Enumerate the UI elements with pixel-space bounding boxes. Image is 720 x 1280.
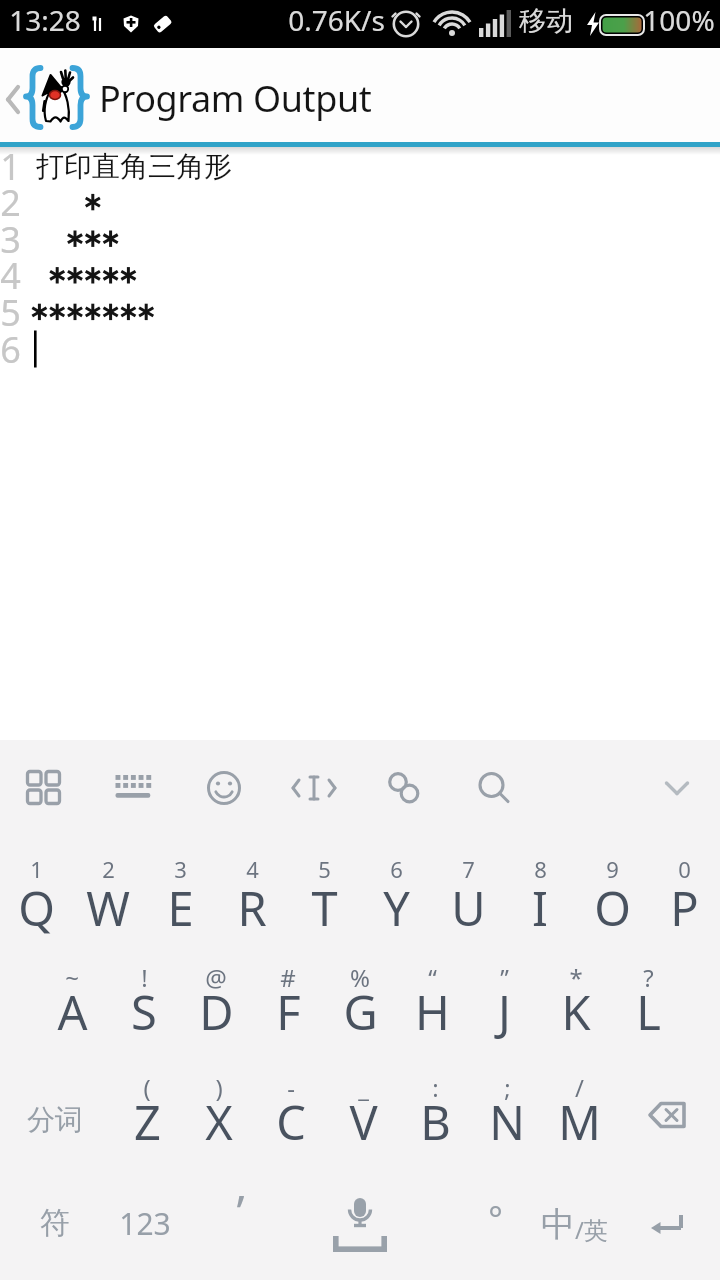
button[interactable] [576, 826, 648, 932]
staticText: D [199, 980, 234, 1044]
button[interactable] [635, 1087, 699, 1143]
staticText: /英 [575, 1213, 608, 1246]
button[interactable] [200, 764, 248, 812]
staticText: : [432, 1071, 439, 1104]
button[interactable] [540, 936, 612, 1042]
staticText: K [561, 980, 591, 1044]
button[interactable] [288, 826, 360, 932]
staticText: 8 [534, 854, 547, 884]
button[interactable] [111, 1048, 183, 1154]
staticText: 3 [174, 854, 187, 884]
staticText: Z [134, 1090, 161, 1154]
button[interactable] [399, 1048, 471, 1154]
staticText: E [167, 876, 194, 940]
staticText: ; [504, 1071, 511, 1104]
staticText: 2 [102, 854, 115, 884]
button[interactable]: 1 [0, 155, 720, 740]
button[interactable] [543, 1048, 615, 1154]
button[interactable] [252, 936, 324, 1042]
button[interactable] [653, 764, 701, 812]
staticText: V [349, 1090, 378, 1154]
staticText: 123 [119, 1203, 171, 1244]
button[interactable]: 分词 [10, 1091, 100, 1147]
staticText: % [350, 961, 370, 994]
staticText: 中 [541, 1203, 575, 1246]
staticText: - [287, 1071, 295, 1104]
staticText: ( [143, 1071, 151, 1104]
staticText: 4 [246, 854, 259, 884]
button[interactable] [109, 764, 157, 812]
staticText: P [670, 876, 699, 940]
staticText: 2 [0, 178, 21, 227]
button[interactable]: 符 [15, 1193, 95, 1253]
staticText: 分词 [27, 1102, 83, 1137]
staticText: # [280, 961, 296, 994]
button[interactable]: 123 [105, 1193, 185, 1253]
button[interactable] [0, 78, 26, 120]
button[interactable] [0, 826, 72, 932]
button[interactable] [20, 764, 68, 812]
button[interactable] [183, 1048, 255, 1154]
staticText: X [205, 1090, 233, 1154]
button[interactable] [648, 826, 720, 932]
button[interactable] [144, 826, 216, 932]
staticText: J [498, 980, 511, 1044]
staticText: ) [215, 1071, 223, 1104]
staticText: ” [500, 961, 509, 994]
button[interactable] [470, 764, 518, 812]
button[interactable] [471, 1048, 543, 1154]
button[interactable] [322, 1187, 398, 1263]
staticText: W [86, 876, 130, 940]
button[interactable] [216, 826, 288, 932]
staticText: 6 [390, 854, 403, 884]
button[interactable]: ° [465, 1185, 525, 1253]
button[interactable] [180, 936, 252, 1042]
button[interactable] [504, 826, 576, 932]
button[interactable] [36, 936, 108, 1042]
staticText: 符 [40, 1204, 70, 1242]
staticText: / [575, 1071, 584, 1104]
staticText: ? [643, 961, 654, 994]
staticText: S [131, 980, 157, 1044]
staticText: “ [428, 961, 437, 994]
button[interactable] [396, 936, 468, 1042]
button[interactable] [432, 826, 504, 932]
button[interactable] [612, 936, 684, 1042]
staticText: G [343, 980, 378, 1044]
staticText: 移动 [519, 4, 573, 38]
button[interactable] [360, 826, 432, 932]
button[interactable] [72, 826, 144, 932]
staticText: ! [141, 961, 148, 994]
staticText: L [636, 980, 661, 1044]
button[interactable] [108, 936, 180, 1042]
staticText: 0 [678, 854, 691, 884]
staticText: B [420, 1090, 451, 1154]
button[interactable] [380, 764, 428, 812]
staticText: @ [205, 961, 227, 994]
staticText: H [415, 980, 450, 1044]
button[interactable] [324, 936, 396, 1042]
staticText: O [594, 876, 631, 940]
button[interactable]: ’ [204, 1165, 276, 1257]
staticText: 1 [30, 854, 43, 884]
staticText: 打印直角三角形 [36, 149, 232, 184]
staticText: 9 [606, 854, 619, 884]
staticText: 1 [0, 142, 21, 191]
staticText: 6 [0, 325, 21, 374]
button[interactable] [290, 764, 338, 812]
button[interactable]: 中 [535, 1197, 615, 1253]
staticText: _ [358, 1071, 369, 1104]
staticText: C [276, 1090, 306, 1154]
staticText: 13:28 [9, 1, 81, 39]
button[interactable] [468, 936, 540, 1042]
staticText: * [569, 961, 583, 994]
button[interactable] [637, 1201, 697, 1249]
button[interactable] [255, 1048, 327, 1154]
staticText: Y [383, 876, 410, 940]
staticText: ° [488, 1196, 503, 1242]
button[interactable] [327, 1048, 399, 1154]
staticText: 3 [0, 215, 21, 264]
staticText: 5 [318, 854, 331, 884]
staticText: A [57, 980, 88, 1044]
staticText: 4 [0, 251, 21, 300]
